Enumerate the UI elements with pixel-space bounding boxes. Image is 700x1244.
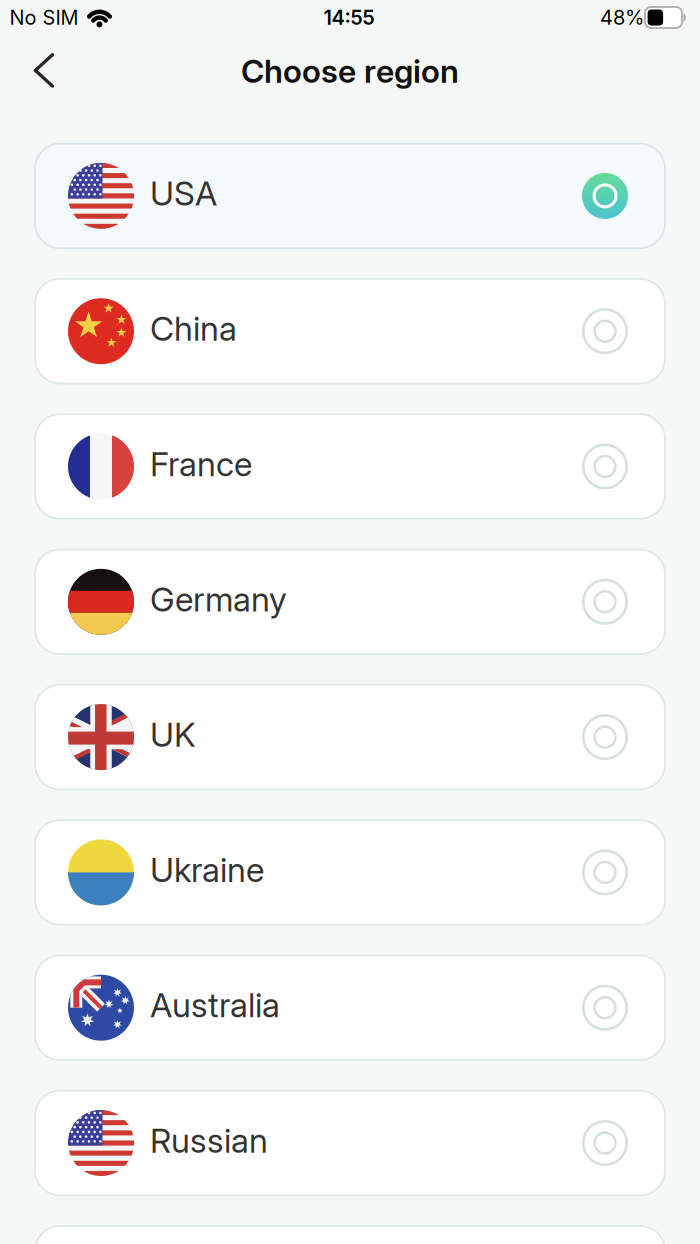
button[interactable]: Back bbox=[23, 43, 65, 99]
button[interactable]: USA bbox=[35, 144, 665, 248]
staticText: UK bbox=[150, 715, 196, 754]
staticText: Germany bbox=[150, 580, 287, 619]
button[interactable]: UK bbox=[35, 685, 665, 789]
button[interactable]: China bbox=[35, 279, 665, 383]
staticText: Russian bbox=[150, 1121, 268, 1160]
button[interactable]: France bbox=[35, 414, 665, 519]
button[interactable]: Russian bbox=[35, 1091, 665, 1195]
staticText: Ukraine bbox=[150, 850, 264, 889]
staticText: 48% bbox=[600, 6, 644, 29]
button[interactable]: Australia bbox=[35, 955, 665, 1060]
button[interactable]: Ukraine bbox=[35, 820, 665, 925]
staticText: Australia bbox=[150, 985, 280, 1025]
button[interactable]: Germany bbox=[35, 549, 665, 654]
staticText: USA bbox=[150, 174, 217, 213]
staticText: China bbox=[150, 309, 237, 348]
staticText: 14:55 bbox=[323, 6, 374, 29]
staticText: Choose region bbox=[241, 52, 459, 90]
staticText: No SIM bbox=[9, 6, 78, 29]
staticText: France bbox=[150, 444, 252, 484]
